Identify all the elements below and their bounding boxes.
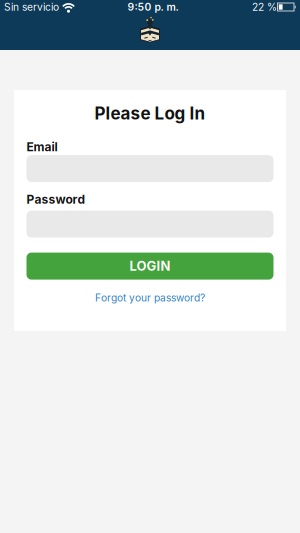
staticText: 22 % (252, 1, 277, 13)
staticText: Sin servicio (4, 1, 59, 13)
staticText: Please Log In (94, 103, 205, 124)
staticText: Forgot your password? (95, 292, 205, 304)
staticText: Email (26, 140, 57, 154)
staticText: LOGIN (129, 258, 170, 274)
button[interactable]: Forgot your password? (26, 292, 273, 304)
staticText: 9:50 p. m. (127, 1, 178, 13)
staticText: Password (26, 192, 85, 207)
button[interactable]: LOGIN (26, 253, 273, 280)
